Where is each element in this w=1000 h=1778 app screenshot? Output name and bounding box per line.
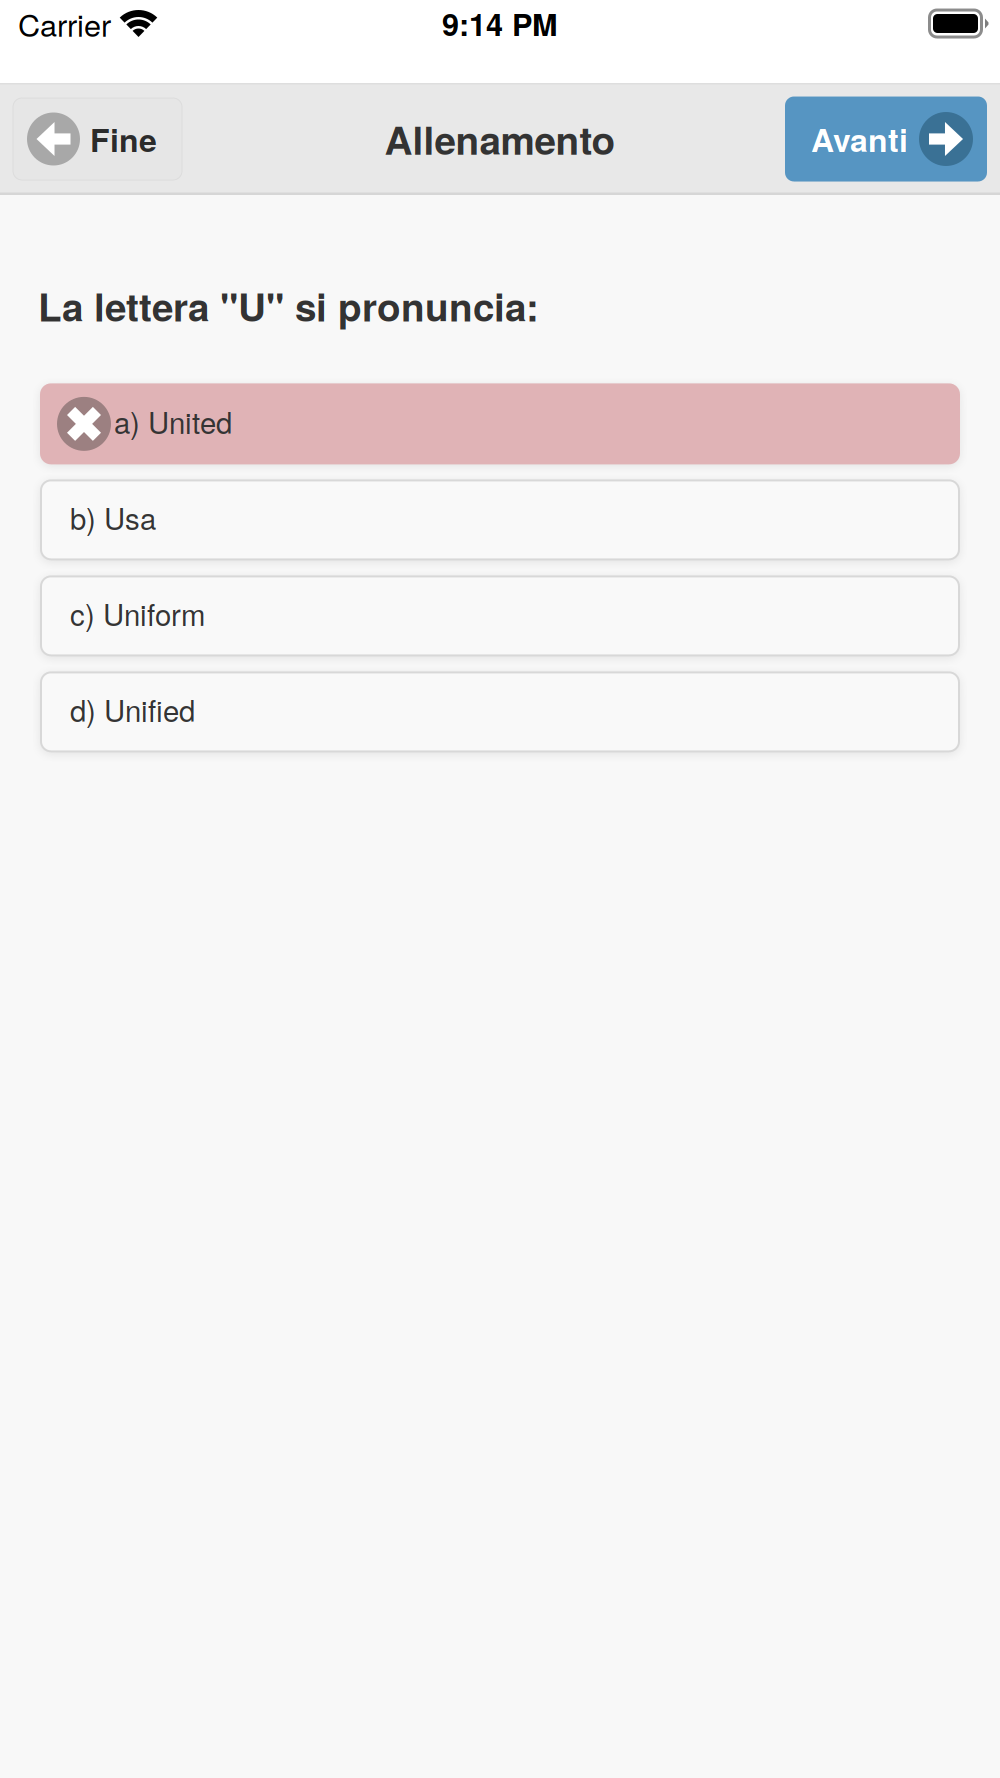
staticText: a) United: [114, 400, 232, 442]
staticText: Avanti: [811, 116, 908, 162]
button[interactable]: a) United: [41, 384, 959, 463]
button[interactable]: Fine: [13, 98, 182, 180]
staticText: c) Uniform: [70, 592, 205, 634]
button[interactable]: d) Unified: [41, 672, 959, 751]
staticText: b) Usa: [70, 496, 156, 538]
button[interactable]: b) Usa: [41, 480, 959, 559]
staticText: Fine: [90, 116, 157, 162]
staticText: La lettera "U" si pronuncia:: [38, 278, 539, 333]
button[interactable]: Avanti: [785, 96, 987, 181]
staticText: 9:14 PM: [442, 1, 558, 45]
staticText: d) Unified: [70, 688, 195, 730]
staticText: Carrier: [18, 1, 111, 45]
button[interactable]: c) Uniform: [41, 576, 959, 655]
staticText: Allenamento: [384, 111, 615, 167]
